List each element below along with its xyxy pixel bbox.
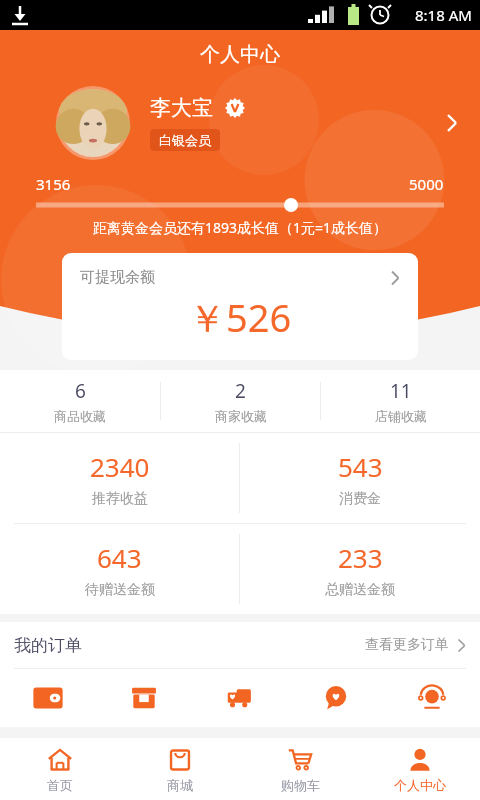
staticText: 推荐收益 — [92, 490, 148, 508]
button[interactable]: 李大宝 — [0, 78, 480, 168]
staticText: 11 — [390, 378, 412, 404]
staticText: 白银会员 — [159, 132, 211, 148]
staticText: 首页 — [47, 777, 73, 793]
staticText: 商品收藏 — [54, 408, 106, 424]
staticText: 商城 — [167, 777, 193, 793]
button[interactable]: 待发货 — [96, 669, 192, 727]
button[interactable]: 233 — [240, 524, 480, 614]
button[interactable]: 2340 — [0, 433, 239, 523]
staticText: 店铺收藏 — [375, 408, 427, 424]
button[interactable]: 可提现余额 — [62, 253, 418, 360]
button[interactable]: 待付款 — [0, 669, 96, 727]
staticText: 6 — [75, 378, 86, 404]
button[interactable]: 首页 — [0, 738, 120, 800]
button[interactable]: 待评价 — [288, 669, 384, 727]
button[interactable]: 543 — [240, 433, 480, 523]
staticText: 距离黄金会员还有1893成长值（1元=1成长值） — [93, 218, 388, 237]
button[interactable]: 个人中心 — [360, 738, 480, 800]
staticText: 购物车 — [281, 777, 320, 793]
staticText: 消费金 — [339, 490, 381, 508]
button[interactable]: 待收货 — [192, 669, 288, 727]
staticText: 643 — [97, 540, 142, 575]
staticText: 商家收藏 — [215, 408, 267, 424]
button[interactable]: 商城 — [120, 738, 240, 800]
staticText: 可提现余额 — [80, 268, 155, 287]
staticText: 查看更多订单 — [365, 636, 449, 654]
staticText: 个人中心 — [200, 42, 280, 67]
button[interactable]: 11 — [321, 370, 480, 432]
staticText: 2340 — [90, 449, 150, 484]
staticText: 8:18 AM — [415, 5, 472, 25]
staticText: 233 — [338, 540, 383, 575]
staticText: 个人中心 — [394, 777, 446, 793]
staticText: 我的订单 — [14, 635, 82, 656]
button[interactable]: 购物车 — [240, 738, 360, 800]
staticText: 2 — [235, 378, 246, 404]
staticText: 543 — [338, 449, 383, 484]
button[interactable]: 售后 — [384, 669, 480, 727]
button[interactable]: 2 — [161, 370, 320, 432]
button[interactable]: 643 — [0, 524, 239, 614]
button[interactable]: 6 — [0, 370, 160, 432]
staticText: 待赠送金额 — [85, 581, 155, 599]
staticText: 总赠送金额 — [325, 581, 395, 599]
staticText: ￥526 — [188, 291, 292, 338]
staticText: 3156 — [36, 174, 71, 194]
button[interactable]: 我的订单 — [14, 622, 468, 668]
button[interactable]: 查看会员详情 — [432, 103, 472, 143]
staticText: 5000 — [409, 174, 444, 194]
staticText: 李大宝 — [150, 95, 213, 121]
